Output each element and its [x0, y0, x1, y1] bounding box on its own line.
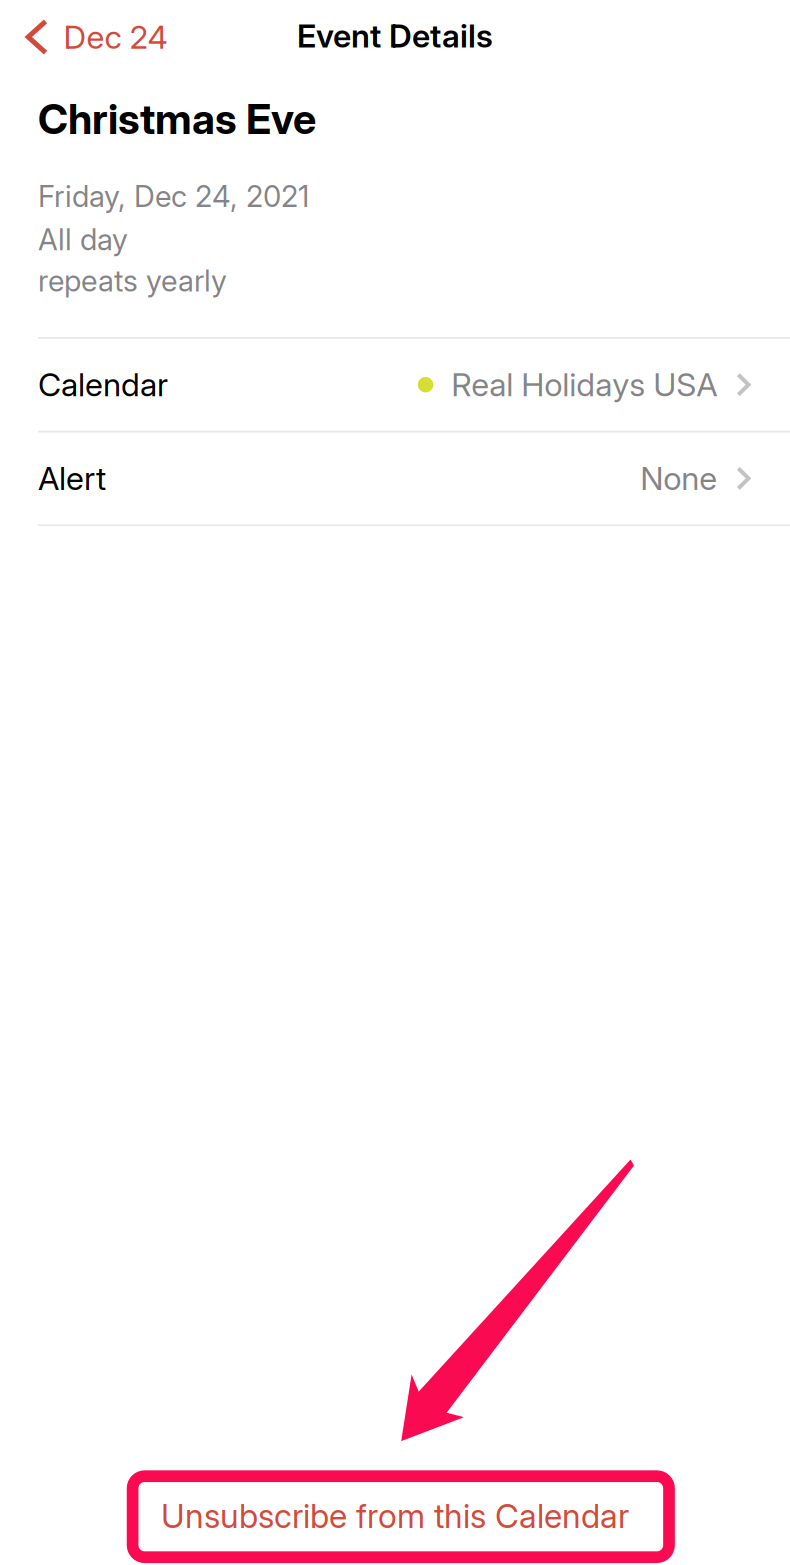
- staticText: None: [640, 459, 717, 498]
- staticText: Christmas Eve: [38, 94, 316, 144]
- staticText: Friday, Dec 24, 2021: [38, 179, 309, 214]
- staticText: Calendar: [38, 365, 168, 404]
- staticText: Real Holidays USA: [451, 365, 717, 404]
- button[interactable]: Calendar: [0, 338, 790, 432]
- button[interactable]: Alert: [0, 432, 790, 525]
- staticText: repeats yearly: [38, 263, 227, 299]
- staticText: Alert: [38, 459, 106, 498]
- button[interactable]: Dec 24: [0, 6, 185, 68]
- staticText: Unsubscribe from this Calendar: [161, 1496, 629, 1536]
- button[interactable]: Unsubscribe from this Calendar: [0, 1470, 790, 1562]
- staticText: Event Details: [297, 16, 493, 55]
- staticText: All day: [38, 222, 128, 257]
- staticText: Dec 24: [63, 18, 167, 56]
